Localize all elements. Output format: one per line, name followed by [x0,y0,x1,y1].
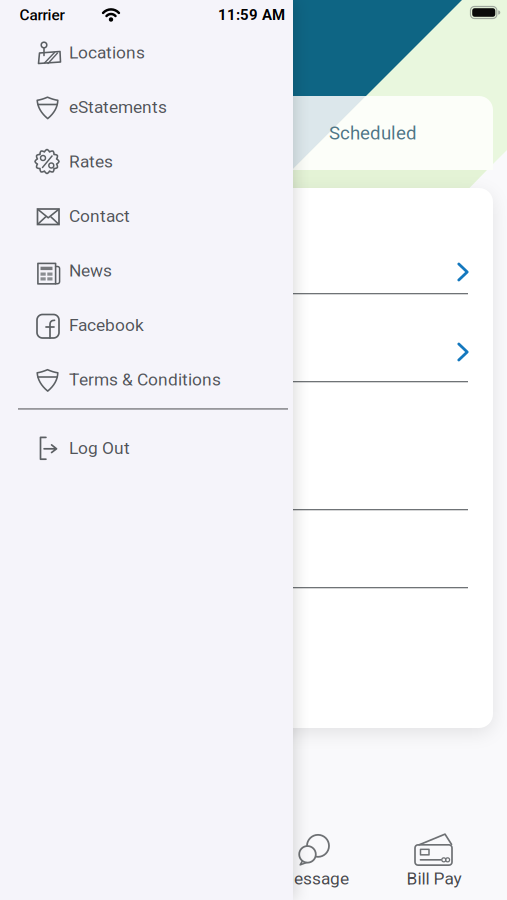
button[interactable]: Rates [0,134,293,189]
staticText: Message [279,868,349,889]
staticText: Terms & Conditions [69,369,221,390]
staticText: Bill Pay [406,868,461,889]
button[interactable]: eStatements [0,80,293,134]
staticText: Contact [69,206,130,226]
button[interactable]: Facebook [0,298,293,352]
staticText: Scheduled [329,122,417,144]
staticText: News [69,260,112,281]
staticText: Facebook [69,315,144,335]
button[interactable]: Log Out [0,421,293,475]
staticText: 11:59 AM [218,6,285,24]
button[interactable]: Scheduled [253,96,493,170]
button[interactable]: Contact [0,189,293,243]
button[interactable]: Scheduled payment 2 [14,293,493,381]
button[interactable]: Locations [0,25,293,80]
button[interactable]: Scheduled payment 1 [14,188,493,293]
staticText: Carrier [19,6,64,24]
button[interactable]: News [0,243,293,298]
button[interactable]: Bill Pay [406,833,461,889]
staticText: eStatements [69,97,167,117]
staticText: Locations [69,42,145,63]
button[interactable]: Message [279,833,349,889]
staticText: Rates [69,151,113,172]
button[interactable]: Terms & Conditions [0,352,293,407]
staticText: Log Out [69,438,130,458]
